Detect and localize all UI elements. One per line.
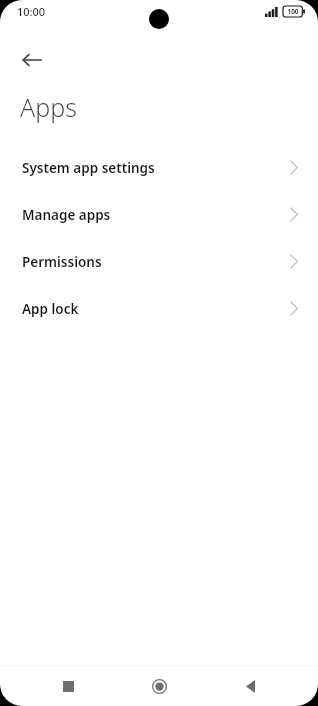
button[interactable]: Back — [10, 38, 54, 82]
staticText: Apps — [20, 90, 77, 124]
staticText: 100 — [287, 7, 299, 16]
button[interactable]: System app settings — [0, 144, 318, 191]
staticText: App lock — [22, 300, 290, 318]
button[interactable]: Recent apps — [49, 667, 87, 705]
button[interactable]: Manage apps — [0, 191, 318, 238]
staticText: System app settings — [22, 159, 290, 177]
button[interactable]: Home — [140, 667, 178, 705]
button[interactable]: Back — [231, 667, 269, 705]
staticText: 10:00 — [17, 4, 46, 19]
button[interactable]: App lock — [0, 285, 318, 332]
staticText: Permissions — [22, 253, 290, 271]
button[interactable]: Permissions — [0, 238, 318, 285]
staticText: Manage apps — [22, 206, 290, 224]
